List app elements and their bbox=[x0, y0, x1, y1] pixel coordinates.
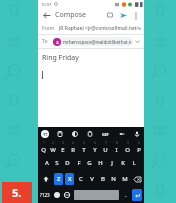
staticText: O bbox=[125, 146, 130, 154]
button[interactable]: ?123 bbox=[38, 187, 52, 203]
button[interactable]: Back bbox=[41, 10, 52, 21]
staticText: G bbox=[87, 159, 92, 167]
button[interactable]: 1 bbox=[38, 140, 48, 155]
button[interactable]: V bbox=[86, 171, 97, 187]
staticText: U bbox=[103, 146, 108, 154]
staticText: 5. bbox=[12, 185, 22, 200]
button[interactable]: L bbox=[128, 155, 139, 171]
staticText: 6 bbox=[94, 141, 96, 145]
staticText: S bbox=[55, 159, 59, 167]
staticText: K bbox=[121, 159, 125, 167]
staticText: 8 bbox=[116, 141, 118, 145]
staticText: 5 bbox=[83, 141, 85, 145]
button[interactable]: 8 bbox=[111, 140, 122, 155]
button[interactable]: Language bbox=[62, 187, 72, 203]
staticText: N bbox=[111, 175, 116, 183]
staticText: R bbox=[71, 146, 75, 154]
button[interactable]: X bbox=[65, 173, 74, 185]
staticText: P bbox=[137, 146, 141, 154]
button[interactable]: 3 bbox=[58, 140, 68, 155]
staticText: D bbox=[65, 159, 70, 167]
staticText: 7 bbox=[105, 141, 107, 145]
button[interactable]: 0 bbox=[133, 140, 144, 155]
button[interactable] bbox=[42, 71, 140, 127]
staticText: A bbox=[45, 159, 49, 167]
button[interactable]: Stickers bbox=[55, 129, 64, 138]
button[interactable]: H bbox=[95, 155, 106, 171]
staticText: J bbox=[111, 159, 113, 167]
button[interactable]: N bbox=[108, 171, 119, 187]
button[interactable]: M bbox=[119, 171, 130, 187]
staticText: Compose bbox=[55, 10, 87, 20]
staticText: B bbox=[101, 175, 105, 183]
button[interactable]: GIF bbox=[100, 130, 111, 138]
button[interactable]: J bbox=[106, 155, 117, 171]
button[interactable]: Clipboard bbox=[85, 129, 94, 138]
button[interactable]: . bbox=[121, 187, 130, 203]
button[interactable]: Voice input bbox=[132, 129, 141, 138]
button[interactable]: To bbox=[42, 35, 140, 48]
button[interactable]: Shift bbox=[38, 171, 53, 187]
button[interactable]: Attach file bbox=[104, 9, 116, 21]
button[interactable]: 4 bbox=[68, 140, 78, 155]
button[interactable]: 7 bbox=[100, 140, 111, 155]
staticText: H bbox=[98, 159, 103, 167]
button[interactable]: Enter bbox=[132, 189, 142, 201]
button[interactable]: B bbox=[97, 171, 108, 187]
button[interactable]: S bbox=[52, 155, 62, 171]
staticText: W bbox=[50, 146, 56, 154]
button[interactable]: From bbox=[42, 22, 140, 34]
staticText: 1 bbox=[43, 141, 45, 145]
button[interactable]: 5 bbox=[78, 140, 89, 155]
staticText: L bbox=[132, 159, 136, 167]
button[interactable]: Z bbox=[54, 173, 63, 185]
staticText: From bbox=[42, 25, 55, 32]
button[interactable]: Send bbox=[117, 9, 129, 21]
button[interactable]: 6 bbox=[89, 140, 100, 155]
staticText: 0 bbox=[138, 141, 140, 145]
staticText: GIF bbox=[102, 132, 109, 137]
button[interactable]: Emoji bbox=[52, 187, 62, 203]
button[interactable]: More options bbox=[130, 10, 141, 21]
staticText: T bbox=[82, 146, 86, 154]
staticText: X bbox=[68, 175, 72, 183]
button[interactable]: 5. bbox=[2, 182, 32, 203]
button[interactable]: F bbox=[73, 155, 84, 171]
button[interactable]: Space bbox=[74, 190, 119, 200]
staticText: . bbox=[125, 191, 127, 199]
button[interactable]: Settings bbox=[117, 129, 126, 138]
staticText: Z bbox=[57, 175, 61, 183]
button[interactable]: A bbox=[42, 155, 52, 171]
staticText: Y bbox=[93, 146, 97, 154]
staticText: ?123 bbox=[40, 192, 50, 198]
button[interactable]: Themes bbox=[70, 129, 79, 138]
staticText: 9 bbox=[127, 141, 129, 145]
button[interactable]: C bbox=[75, 171, 86, 187]
staticText: Ring Friday bbox=[42, 53, 79, 63]
button[interactable]: Ring Friday bbox=[42, 53, 140, 63]
staticText: M bbox=[122, 175, 128, 183]
staticText: C bbox=[79, 175, 83, 183]
staticText: 4 bbox=[72, 141, 74, 145]
staticText: Q bbox=[41, 146, 46, 154]
staticText: E bbox=[61, 146, 65, 154]
button[interactable]: Backspace bbox=[130, 171, 144, 187]
button[interactable]: 2 bbox=[48, 140, 58, 155]
staticText: F bbox=[77, 159, 81, 167]
button[interactable]: Google Assistant bbox=[41, 130, 49, 138]
staticText: I bbox=[115, 146, 118, 154]
staticText: V bbox=[90, 175, 94, 183]
staticText: To bbox=[42, 38, 48, 45]
staticText: 10:07 bbox=[41, 2, 52, 7]
button[interactable]: G bbox=[84, 155, 95, 171]
button[interactable]: D bbox=[62, 155, 73, 171]
staticText: 3 bbox=[62, 141, 64, 145]
button[interactable]: 9 bbox=[122, 140, 133, 155]
staticText: JR Raphael <jr@contoso9mail.net> bbox=[59, 25, 140, 32]
staticText: 2 bbox=[52, 141, 54, 145]
staticText: mrbensspace@realdoitlikethat.net bbox=[63, 39, 133, 45]
button[interactable]: K bbox=[117, 155, 128, 171]
